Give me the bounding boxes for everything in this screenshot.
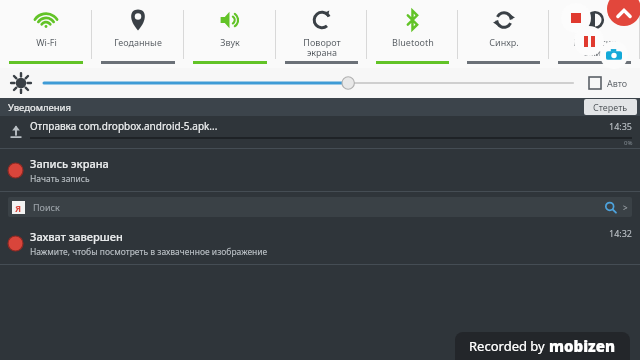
staticText: Нажмите, чтобы посмотреть в захваченное … [30, 246, 268, 258]
button[interactable] [44, 72, 573, 94]
staticText: mobizen [549, 336, 616, 356]
staticText: Уведомления [8, 101, 71, 114]
staticText: 14:32 [609, 227, 633, 239]
staticText: Bluetooth [392, 36, 434, 48]
staticText: Recorded by [469, 337, 549, 355]
button[interactable]: Захват завершен [0, 222, 640, 264]
staticText: Звук [220, 36, 240, 48]
staticText: Поиск [33, 201, 60, 213]
button[interactable]: Синхр. [458, 0, 549, 68]
button[interactable]: Wi-Fi [0, 0, 92, 68]
button[interactable]: Pause recording [574, 26, 604, 56]
staticText: Запись экрана [30, 156, 109, 171]
staticText: Захват завершен [30, 229, 123, 244]
staticText: Начать запись [30, 173, 90, 185]
staticText: Синхр. [489, 36, 519, 48]
staticText: Авто [607, 77, 628, 89]
staticText: Wi-Fi [36, 36, 57, 48]
button[interactable]: Поворот экрана [276, 0, 367, 68]
button[interactable]: Геоданные [92, 0, 184, 68]
staticText: Поворот экрана [303, 36, 341, 58]
staticText: > [623, 202, 628, 213]
button[interactable]: Запись экрана [0, 149, 640, 191]
button[interactable]: Инверсия ожид [549, 0, 640, 68]
button[interactable]: Авто [587, 77, 630, 89]
staticText: Стереть [593, 101, 628, 113]
button[interactable]: Я [8, 197, 632, 217]
button[interactable]: Bluetooth [367, 0, 458, 68]
staticText: Отправка com.dropbox.android-5.apk... [30, 119, 218, 133]
button[interactable]: Brightness [10, 72, 32, 94]
button[interactable]: Звук [184, 0, 276, 68]
button[interactable]: Отправка com.dropbox.android-5.apk... [0, 116, 640, 148]
staticText: Я [15, 202, 22, 214]
staticText: 14:35 [609, 120, 633, 132]
button[interactable]: Capture screenshot [600, 41, 628, 69]
button[interactable]: Stop recording [561, 3, 591, 33]
button[interactable]: Стереть [584, 99, 637, 115]
staticText: Инверсия ожид [573, 36, 617, 58]
button[interactable]: Collapse [607, 0, 640, 26]
staticText: Геоданные [114, 36, 162, 48]
staticText: 0% [624, 139, 633, 147]
